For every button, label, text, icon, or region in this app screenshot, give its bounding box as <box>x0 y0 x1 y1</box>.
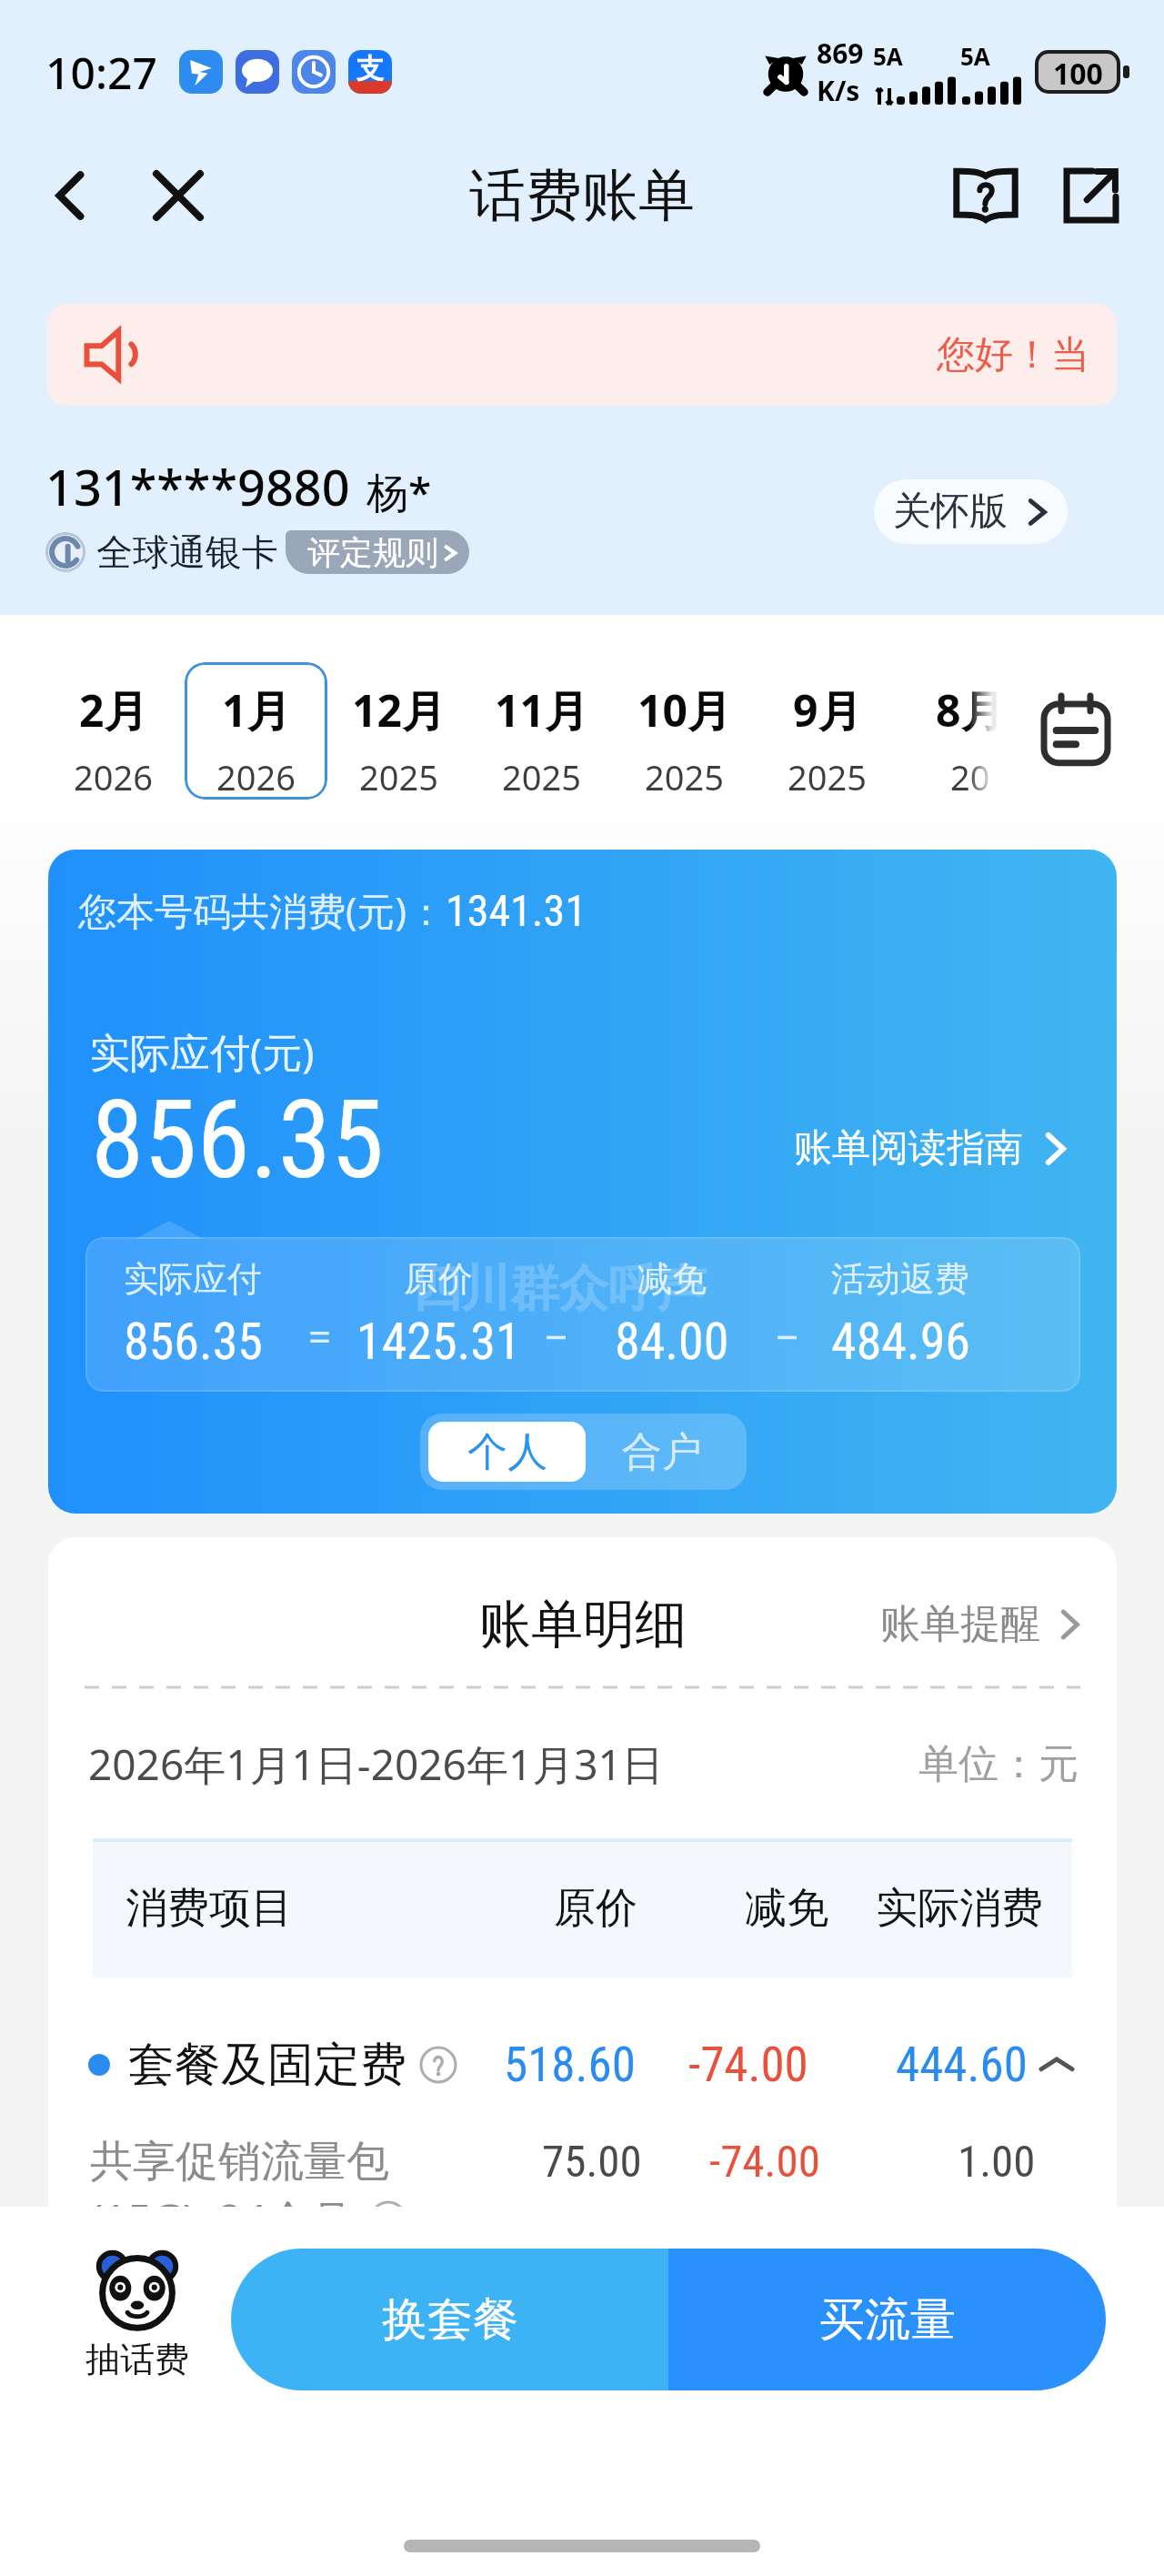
staticText: 75.00 <box>542 2136 642 2188</box>
staticText: 10月 <box>637 680 731 740</box>
button[interactable]: 11月 <box>470 662 613 800</box>
staticText: 消费项目 <box>125 1882 293 1935</box>
staticText: 账单提醒 <box>880 1599 1040 1649</box>
staticText: 抽话费 <box>85 2338 189 2381</box>
button[interactable]: 抽话费 <box>69 2247 206 2381</box>
staticText: 您本号码共消费(元)： <box>78 884 446 936</box>
button[interactable]: 账单提醒 <box>880 1599 1082 1649</box>
staticText: 个人 <box>467 1427 547 1477</box>
staticText: 1425.31 <box>356 1312 521 1372</box>
button[interactable]: 换套餐 <box>231 2249 668 2390</box>
staticText: 您好！当 <box>937 331 1089 379</box>
staticText: 12月 <box>352 680 446 740</box>
button[interactable]: 套餐及固定费 <box>48 2033 1117 2097</box>
button[interactable]: 12月 <box>327 662 470 800</box>
staticText: 869 <box>817 35 864 72</box>
button[interactable]: 账单阅读指南 <box>794 1124 1069 1172</box>
button[interactable]: Pick month <box>1032 687 1119 774</box>
staticText: 支 <box>356 52 384 86</box>
staticText: 买流量 <box>819 2291 956 2349</box>
button[interactable]: 1月 <box>185 662 327 800</box>
staticText: 减免 <box>637 1257 707 1301</box>
staticText: 2026 <box>74 753 153 800</box>
staticText: 2025 <box>788 753 867 800</box>
staticText: 单位：元 <box>918 1739 1079 1789</box>
button[interactable]: 买流量 <box>668 2249 1106 2390</box>
staticText: 2025 <box>645 753 724 800</box>
button[interactable]: 您好！当 <box>47 304 1117 406</box>
staticText: 10:27 <box>45 43 157 102</box>
staticText: 实际应付(元) <box>90 1024 315 1079</box>
staticText: 账单阅读指南 <box>794 1124 1023 1172</box>
button[interactable]: Close <box>138 156 218 236</box>
button[interactable]: Share <box>1051 156 1131 236</box>
staticText: 减免 <box>745 1882 828 1935</box>
staticText: 100 <box>1053 54 1103 90</box>
staticText: 全球通银卡 <box>96 529 278 575</box>
button[interactable]: 2月 <box>42 662 185 800</box>
staticText: − <box>545 1309 568 1363</box>
button[interactable]: 关怀版 <box>874 479 1068 544</box>
staticText: 1341.31 <box>446 885 587 936</box>
staticText: 原价 <box>554 1882 637 1935</box>
staticText: 2026 <box>216 753 296 800</box>
staticText: 856.35 <box>91 1078 385 1203</box>
staticText: 实际应付 <box>124 1257 262 1301</box>
staticText: 2026年1月1日-2026年1月31日 <box>88 1736 664 1793</box>
staticText: 杨* <box>366 463 432 520</box>
staticText: -74.00 <box>709 2136 820 2188</box>
staticText: − <box>776 1309 799 1363</box>
staticText: 关怀版 <box>893 488 1008 536</box>
staticText: 合户 <box>622 1427 702 1477</box>
staticText: 原价 <box>404 1257 473 1301</box>
staticText: 套餐及固定费 <box>128 2036 406 2094</box>
staticText: 共享促销流量包 <box>90 2135 389 2189</box>
staticText: 9月 <box>793 680 862 740</box>
staticText: 话费账单 <box>469 160 695 231</box>
staticText: 2月 <box>79 680 148 740</box>
staticText: 5A <box>873 40 903 72</box>
staticText: 1.00 <box>958 2136 1036 2188</box>
button[interactable]: 9月 <box>756 662 898 800</box>
staticText: 11月 <box>495 680 588 740</box>
button[interactable]: 评定规则 <box>286 530 469 574</box>
button[interactable]: 8月 <box>898 662 1041 800</box>
staticText: 换套餐 <box>382 2291 518 2349</box>
staticText: 20 <box>950 753 990 800</box>
staticText: 8月 <box>936 680 1005 740</box>
staticText: 账单明细 <box>479 1592 687 1657</box>
staticText: 活动返费 <box>831 1257 969 1301</box>
staticText: 1月 <box>222 680 291 740</box>
staticText: 实际消费 <box>876 1882 1043 1935</box>
staticText: -74.00 <box>688 2037 808 2093</box>
button[interactable]: Help <box>946 156 1026 236</box>
staticText: 84.00 <box>615 1312 729 1372</box>
staticText: 2025 <box>502 753 581 800</box>
staticText: 2025 <box>359 753 438 800</box>
staticText: 131****9880 <box>45 453 350 520</box>
staticText: 5A <box>960 40 990 72</box>
staticText: 484.96 <box>831 1312 970 1372</box>
staticText: = <box>308 1309 332 1363</box>
button[interactable]: 个人 <box>428 1422 586 1482</box>
staticText: 四川群众呼声 <box>412 1258 707 1320</box>
staticText: 444.60 <box>896 2037 1028 2093</box>
button[interactable]: 10月 <box>613 662 756 800</box>
staticText: K/s <box>817 72 860 109</box>
staticText: 518.60 <box>504 2037 636 2093</box>
button[interactable]: Back <box>31 156 111 236</box>
staticText: 856.35 <box>124 1312 263 1372</box>
staticText: (15G) 24个月 <box>90 2190 353 2207</box>
button[interactable]: 合户 <box>586 1422 738 1482</box>
staticText: 评定规则 <box>307 532 438 573</box>
